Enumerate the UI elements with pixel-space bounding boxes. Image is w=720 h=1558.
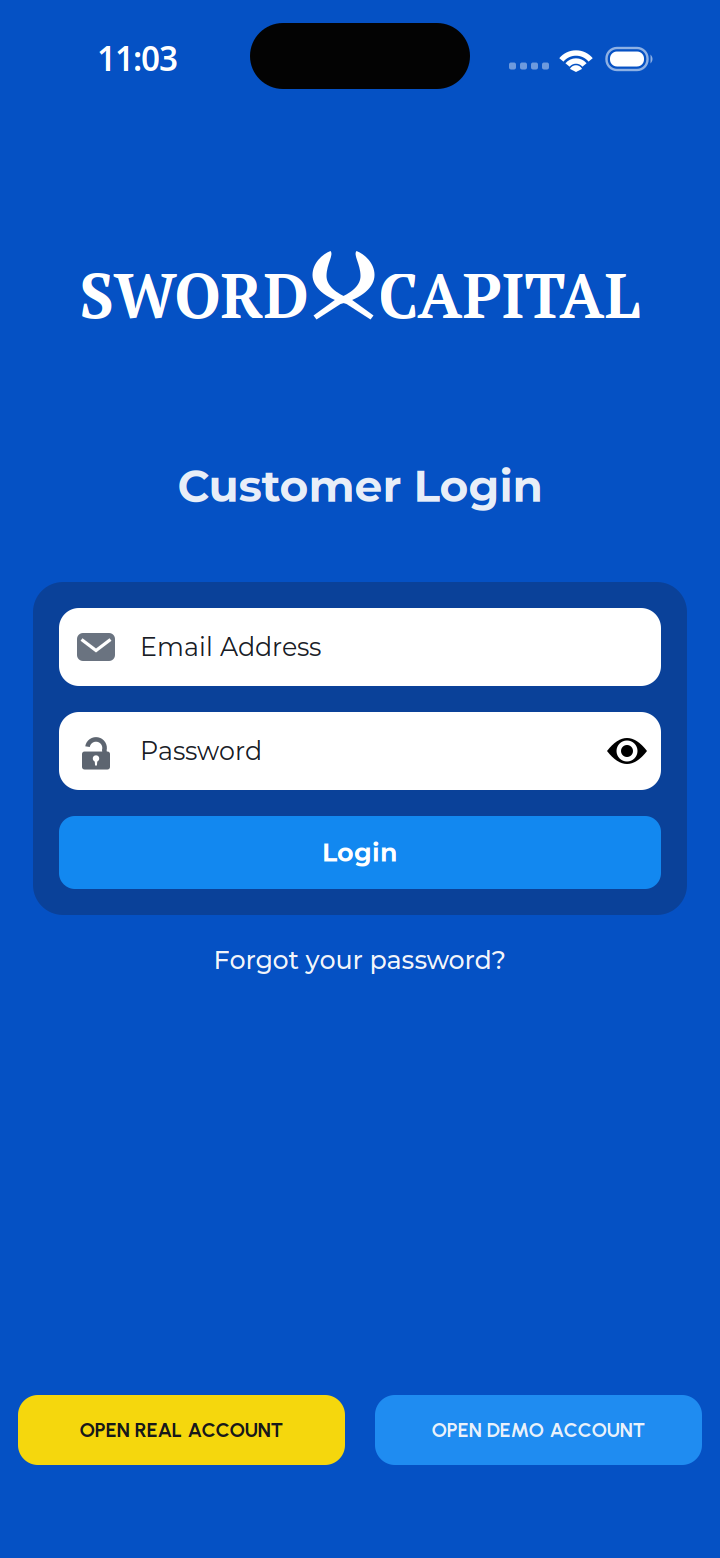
staticText: Login — [322, 837, 398, 868]
staticText: Password — [140, 736, 262, 766]
staticText: Email Address — [140, 632, 321, 662]
button[interactable]: Password — [59, 712, 661, 790]
staticText: Forgot your password? — [213, 945, 506, 975]
button[interactable]: Email Address — [59, 608, 661, 686]
button[interactable]: OPEN REAL ACCOUNT — [18, 1395, 345, 1465]
staticText: OPEN REAL ACCOUNT — [79, 1418, 283, 1442]
staticText: CAPITAL — [378, 254, 640, 336]
button[interactable]: OPEN DEMO ACCOUNT — [375, 1395, 702, 1465]
button[interactable]: Login — [59, 816, 661, 889]
button[interactable]: Forgot your password? — [213, 943, 506, 977]
staticText: Customer Login — [177, 459, 542, 513]
staticText: OPEN DEMO ACCOUNT — [431, 1418, 645, 1442]
staticText: SWORD — [79, 254, 308, 336]
staticText: 11:03 — [97, 36, 178, 80]
